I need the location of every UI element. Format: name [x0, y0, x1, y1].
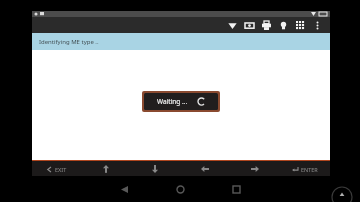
button[interactable]: Wifi: [224, 17, 241, 33]
button[interactable]: More options: [309, 17, 326, 33]
button[interactable]: Down: [130, 161, 180, 177]
staticText: Waiting ...: [157, 97, 188, 106]
button[interactable]: Home: [163, 178, 197, 200]
button[interactable]: Recent apps: [219, 178, 253, 200]
button[interactable]: ENTER: [280, 161, 330, 177]
button[interactable]: Right: [230, 161, 280, 177]
button[interactable]: Up: [81, 161, 130, 177]
button[interactable]: Assistant: [332, 182, 352, 202]
button[interactable]: Identifying ME type ..: [32, 33, 330, 50]
button[interactable]: EXIT: [32, 161, 81, 177]
button[interactable]: Left: [180, 161, 230, 177]
staticText: ENTER: [301, 166, 318, 173]
button[interactable]: Print: [258, 17, 275, 33]
staticText: Identifying ME type ..: [39, 38, 99, 46]
staticText: EXIT: [55, 166, 67, 173]
button[interactable]: Camera: [241, 17, 258, 33]
button[interactable]: Info: [275, 17, 292, 33]
button[interactable]: Back: [107, 178, 141, 200]
button[interactable]: Apps: [292, 17, 309, 33]
